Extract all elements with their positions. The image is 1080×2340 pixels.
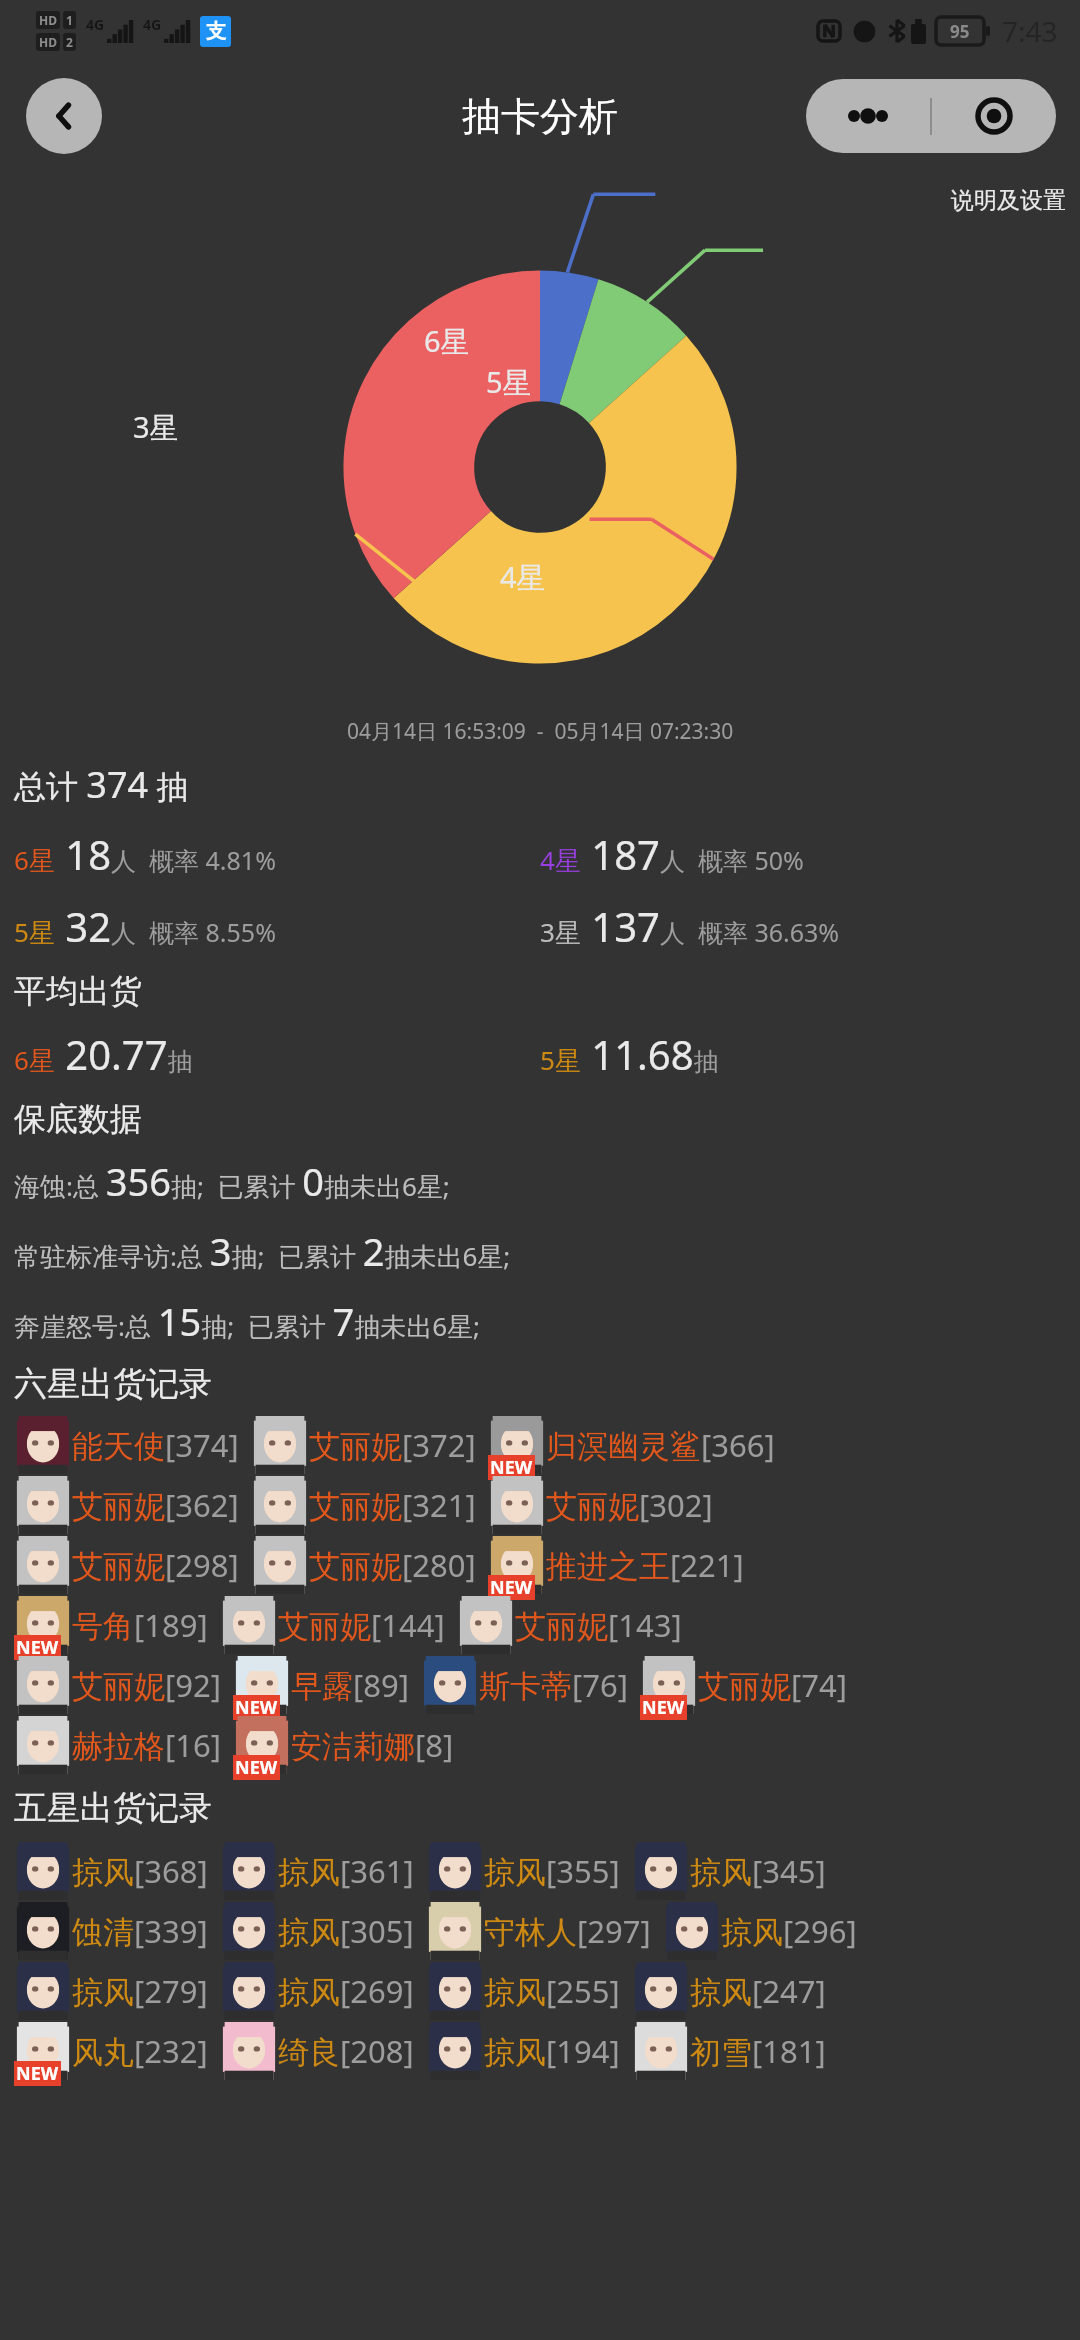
button[interactable]: NEW [233, 1656, 421, 1714]
staticText: 五星出货记录 [14, 1787, 212, 1829]
button[interactable]: 掠风[255] [426, 1962, 632, 2020]
button[interactable]: 绮良[208] [220, 2022, 426, 2080]
staticText: 保底数据 [14, 1099, 142, 1139]
button[interactable]: 掠风[355] [426, 1842, 632, 1900]
staticText: 艾丽妮[280] [309, 1544, 476, 1586]
staticText: 守林人[297] [484, 1910, 651, 1952]
button[interactable]: 艾丽妮[144] [220, 1596, 457, 1654]
staticText: 六星出货记录 [14, 1363, 212, 1405]
staticText: 掠风[255] [484, 1970, 620, 2012]
button[interactable]: NEW [14, 2022, 220, 2080]
staticText: 奔崖怒号:总 15抽; 已累计 7抽未出6星; [14, 1295, 481, 1347]
button[interactable]: 蚀清[339] [14, 1902, 220, 1960]
button[interactable]: 艾丽妮[302] [488, 1476, 725, 1534]
staticText: 掠风[355] [484, 1850, 620, 1892]
staticText: 支 [206, 19, 226, 44]
staticText: 常驻标准寻访:总 3抽; 已累计 2抽未出6星; [14, 1225, 511, 1277]
staticText: 推进之王[221] [546, 1544, 744, 1586]
staticText: NEW [490, 1455, 533, 1480]
staticText: 掠风[247] [690, 1970, 826, 2012]
staticText: NEW [642, 1695, 685, 1720]
staticText: 平均出货 [14, 971, 142, 1011]
staticText: 95 [950, 20, 970, 43]
staticText: NEW [16, 2061, 59, 2086]
staticText: 总计 374 抽 [14, 760, 189, 809]
staticText: 艾丽妮[298] [72, 1544, 239, 1586]
staticText: 5星 [486, 362, 532, 402]
staticText: 2 [66, 34, 73, 50]
button[interactable]: More [806, 79, 930, 153]
staticText: 04月14日 16:53:09 - 05月14日 07:23:30 [347, 717, 734, 746]
button[interactable]: 掠风[305] [220, 1902, 426, 1960]
button[interactable]: 守林人[297] [426, 1902, 663, 1960]
staticText: 斯卡蒂[76] [479, 1664, 628, 1706]
staticText: 海蚀:总 356抽; 已累计 0抽未出6星; [14, 1155, 450, 1207]
button[interactable]: 艾丽妮[362] [14, 1476, 251, 1534]
staticText: NEW [235, 1755, 278, 1780]
staticText: 掠风[361] [278, 1850, 414, 1892]
staticText: 掠风[279] [72, 1970, 208, 2012]
button[interactable]: 艾丽妮[92] [14, 1656, 233, 1714]
staticText: 6星 [424, 321, 470, 361]
staticText: 初雪[181] [690, 2030, 826, 2072]
button[interactable]: 掠风[345] [632, 1842, 838, 1900]
button[interactable]: 艾丽妮[372] [251, 1416, 488, 1474]
staticText: 安洁莉娜[8] [291, 1724, 454, 1766]
staticText: 掠风[305] [278, 1910, 414, 1952]
staticText: NEW [16, 1635, 59, 1660]
button[interactable]: 艾丽妮[298] [14, 1536, 251, 1594]
staticText: 早露[89] [291, 1664, 409, 1706]
button[interactable]: 艾丽妮[321] [251, 1476, 488, 1534]
button[interactable]: 赫拉格[16] [14, 1716, 233, 1774]
button[interactable]: 掠风[247] [632, 1962, 838, 2020]
button[interactable]: 艾丽妮[143] [457, 1596, 694, 1654]
staticText: 1 [66, 12, 73, 28]
button[interactable]: 掠风[296] [663, 1902, 869, 1960]
staticText: 7:43 [1002, 12, 1058, 50]
staticText: 绮良[208] [278, 2030, 414, 2072]
staticText: 4星 187人 概率 50% [540, 827, 804, 881]
button[interactable]: NEW [488, 1536, 756, 1594]
button[interactable]: 能天使[374] [14, 1416, 251, 1474]
button[interactable]: Close mini program [932, 79, 1056, 153]
staticText: 风丸[232] [72, 2030, 208, 2072]
button[interactable]: NEW [233, 1716, 466, 1774]
staticText: 5星 11.68抽 [540, 1027, 719, 1081]
staticText: 5星 32人 概率 8.55% [14, 899, 276, 953]
staticText: 艾丽妮[92] [72, 1664, 221, 1706]
staticText: 6星 18人 概率 4.81% [14, 827, 276, 881]
staticText: 能天使[374] [72, 1424, 239, 1466]
button[interactable]: 掠风[279] [14, 1962, 220, 2020]
button[interactable]: NEW [14, 1596, 220, 1654]
button[interactable]: 掠风[361] [220, 1842, 426, 1900]
button[interactable]: 掠风[269] [220, 1962, 426, 2020]
staticText: 抽卡分析 [462, 92, 618, 141]
staticText: 4星 [500, 557, 546, 597]
button[interactable]: 掠风[368] [14, 1842, 220, 1900]
button[interactable]: 艾丽妮[280] [251, 1536, 488, 1594]
staticText: 掠风[296] [721, 1910, 857, 1952]
button[interactable]: 初雪[181] [632, 2022, 838, 2080]
staticText: 掠风[269] [278, 1970, 414, 2012]
staticText: HD [39, 34, 57, 50]
button[interactable]: 说明及设置 [951, 184, 1080, 217]
button[interactable]: 斯卡蒂[76] [421, 1656, 640, 1714]
staticText: 6星 20.77抽 [14, 1027, 193, 1081]
staticText: 3星 [133, 407, 179, 447]
button[interactable]: Back [26, 78, 102, 154]
staticText: 掠风[345] [690, 1850, 826, 1892]
staticText: NEW [235, 1695, 278, 1720]
staticText: 蚀清[339] [72, 1910, 208, 1952]
button[interactable]: 掠风[194] [426, 2022, 632, 2080]
staticText: 4G [143, 15, 162, 34]
staticText: 掠风[194] [484, 2030, 620, 2072]
staticText: 艾丽妮[144] [278, 1604, 445, 1646]
staticText: HD [39, 12, 57, 28]
staticText: 艾丽妮[74] [698, 1664, 847, 1706]
button[interactable]: NEW [488, 1416, 787, 1474]
staticText: 归溟幽灵鲨[366] [546, 1424, 775, 1466]
button[interactable]: NEW [640, 1656, 859, 1714]
staticText: 号角[189] [72, 1604, 208, 1646]
staticText: NEW [490, 1575, 533, 1600]
staticText: 说明及设置 [951, 186, 1066, 215]
